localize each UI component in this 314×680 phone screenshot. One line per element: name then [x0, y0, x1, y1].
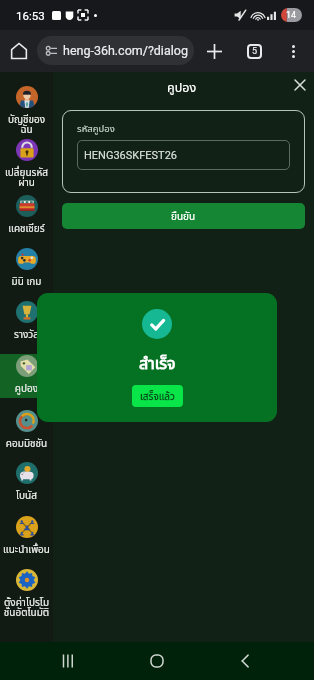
button[interactable]: แนะนำเพื่อน	[0, 516, 53, 557]
button[interactable]: Tabs	[240, 37, 268, 65]
staticText: แนะนำเพื่อน	[0, 542, 53, 557]
staticText: รางวัล	[0, 327, 53, 342]
staticText: คอมมิชชัน	[0, 436, 53, 451]
button[interactable]: คอมมิชชัน	[0, 410, 53, 451]
staticText: เปลี่ยนรหัส ผ่าน	[0, 165, 53, 191]
staticText: โบนัส	[0, 488, 53, 503]
staticText: ยืนยัน	[171, 209, 196, 224]
button[interactable]: มินิ เกม	[0, 248, 53, 289]
button[interactable]: New tab	[200, 37, 228, 65]
button[interactable]: Recents	[50, 642, 88, 680]
button[interactable]: เสร็จแล้ว	[132, 385, 183, 407]
staticText: รหัสคูปอง	[77, 122, 115, 136]
button[interactable]: แคชเชียร์	[0, 195, 53, 236]
staticText: 5	[252, 46, 258, 57]
staticText: 14	[286, 10, 297, 21]
button[interactable]: รางวัล	[0, 301, 53, 342]
button[interactable]: ตั้งค่าโปรโม ชั่นอัตโนมัติ	[0, 569, 53, 621]
staticText: แคชเชียร์	[0, 221, 53, 236]
button[interactable]: Back	[226, 642, 264, 680]
button[interactable]: Home	[5, 37, 33, 65]
button[interactable]: โบนัส	[0, 462, 53, 503]
staticText: คูปอง	[167, 79, 197, 98]
staticText: heng-36h.com/?dialog	[63, 43, 188, 58]
button[interactable]: heng-36h.com/?dialog	[37, 36, 194, 65]
button[interactable]: คูปอง	[0, 355, 53, 396]
staticText: ตั้งค่าโปรโม ชั่นอัตโนมัติ	[0, 595, 53, 621]
staticText: HENG36SKFEST26	[84, 149, 178, 162]
staticText: มินิ เกม	[0, 274, 53, 289]
staticText: คูปอง	[0, 381, 53, 396]
button[interactable]: Home	[138, 642, 176, 680]
staticText: บัญชีของ ฉัน	[0, 112, 53, 138]
button[interactable]: Close	[290, 75, 310, 95]
staticText: สำเร็จ	[139, 352, 176, 376]
button[interactable]: More options	[279, 37, 307, 65]
button[interactable]: ยืนยัน	[62, 203, 305, 229]
button[interactable]: เปลี่ยนรหัส ผ่าน	[0, 139, 53, 191]
button[interactable]: บัญชีของ ฉัน	[0, 86, 53, 138]
staticText: เสร็จแล้ว	[140, 389, 175, 404]
staticText: 16:53	[16, 9, 45, 22]
